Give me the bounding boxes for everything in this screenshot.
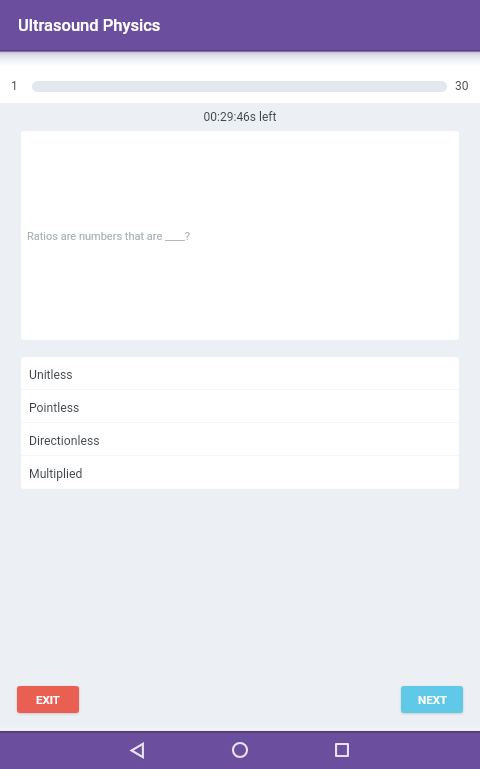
staticText: Ultrasound Physics bbox=[18, 16, 161, 35]
staticText: Ratios are numbers that are ____? bbox=[27, 230, 191, 243]
staticText: EXIT bbox=[36, 693, 60, 706]
button[interactable]: Unitless bbox=[21, 357, 459, 390]
button[interactable]: Multiplied bbox=[21, 456, 459, 489]
staticText: 00:29:46s left bbox=[0, 110, 480, 124]
button[interactable]: Recent apps bbox=[318, 731, 366, 769]
staticText: 1 bbox=[11, 79, 18, 93]
button[interactable]: NEXT bbox=[401, 686, 463, 713]
staticText: Multiplied bbox=[29, 467, 83, 481]
button[interactable]: Directionless bbox=[21, 423, 459, 456]
button[interactable]: Home bbox=[216, 731, 264, 769]
staticText: 30 bbox=[455, 79, 469, 93]
staticText: NEXT bbox=[418, 693, 447, 706]
staticText: Unitless bbox=[29, 368, 73, 382]
staticText: Pointless bbox=[29, 401, 80, 415]
button[interactable]: EXIT bbox=[17, 686, 79, 713]
button[interactable]: Pointless bbox=[21, 390, 459, 423]
staticText: Directionless bbox=[29, 434, 100, 448]
button[interactable]: Back bbox=[113, 731, 161, 769]
